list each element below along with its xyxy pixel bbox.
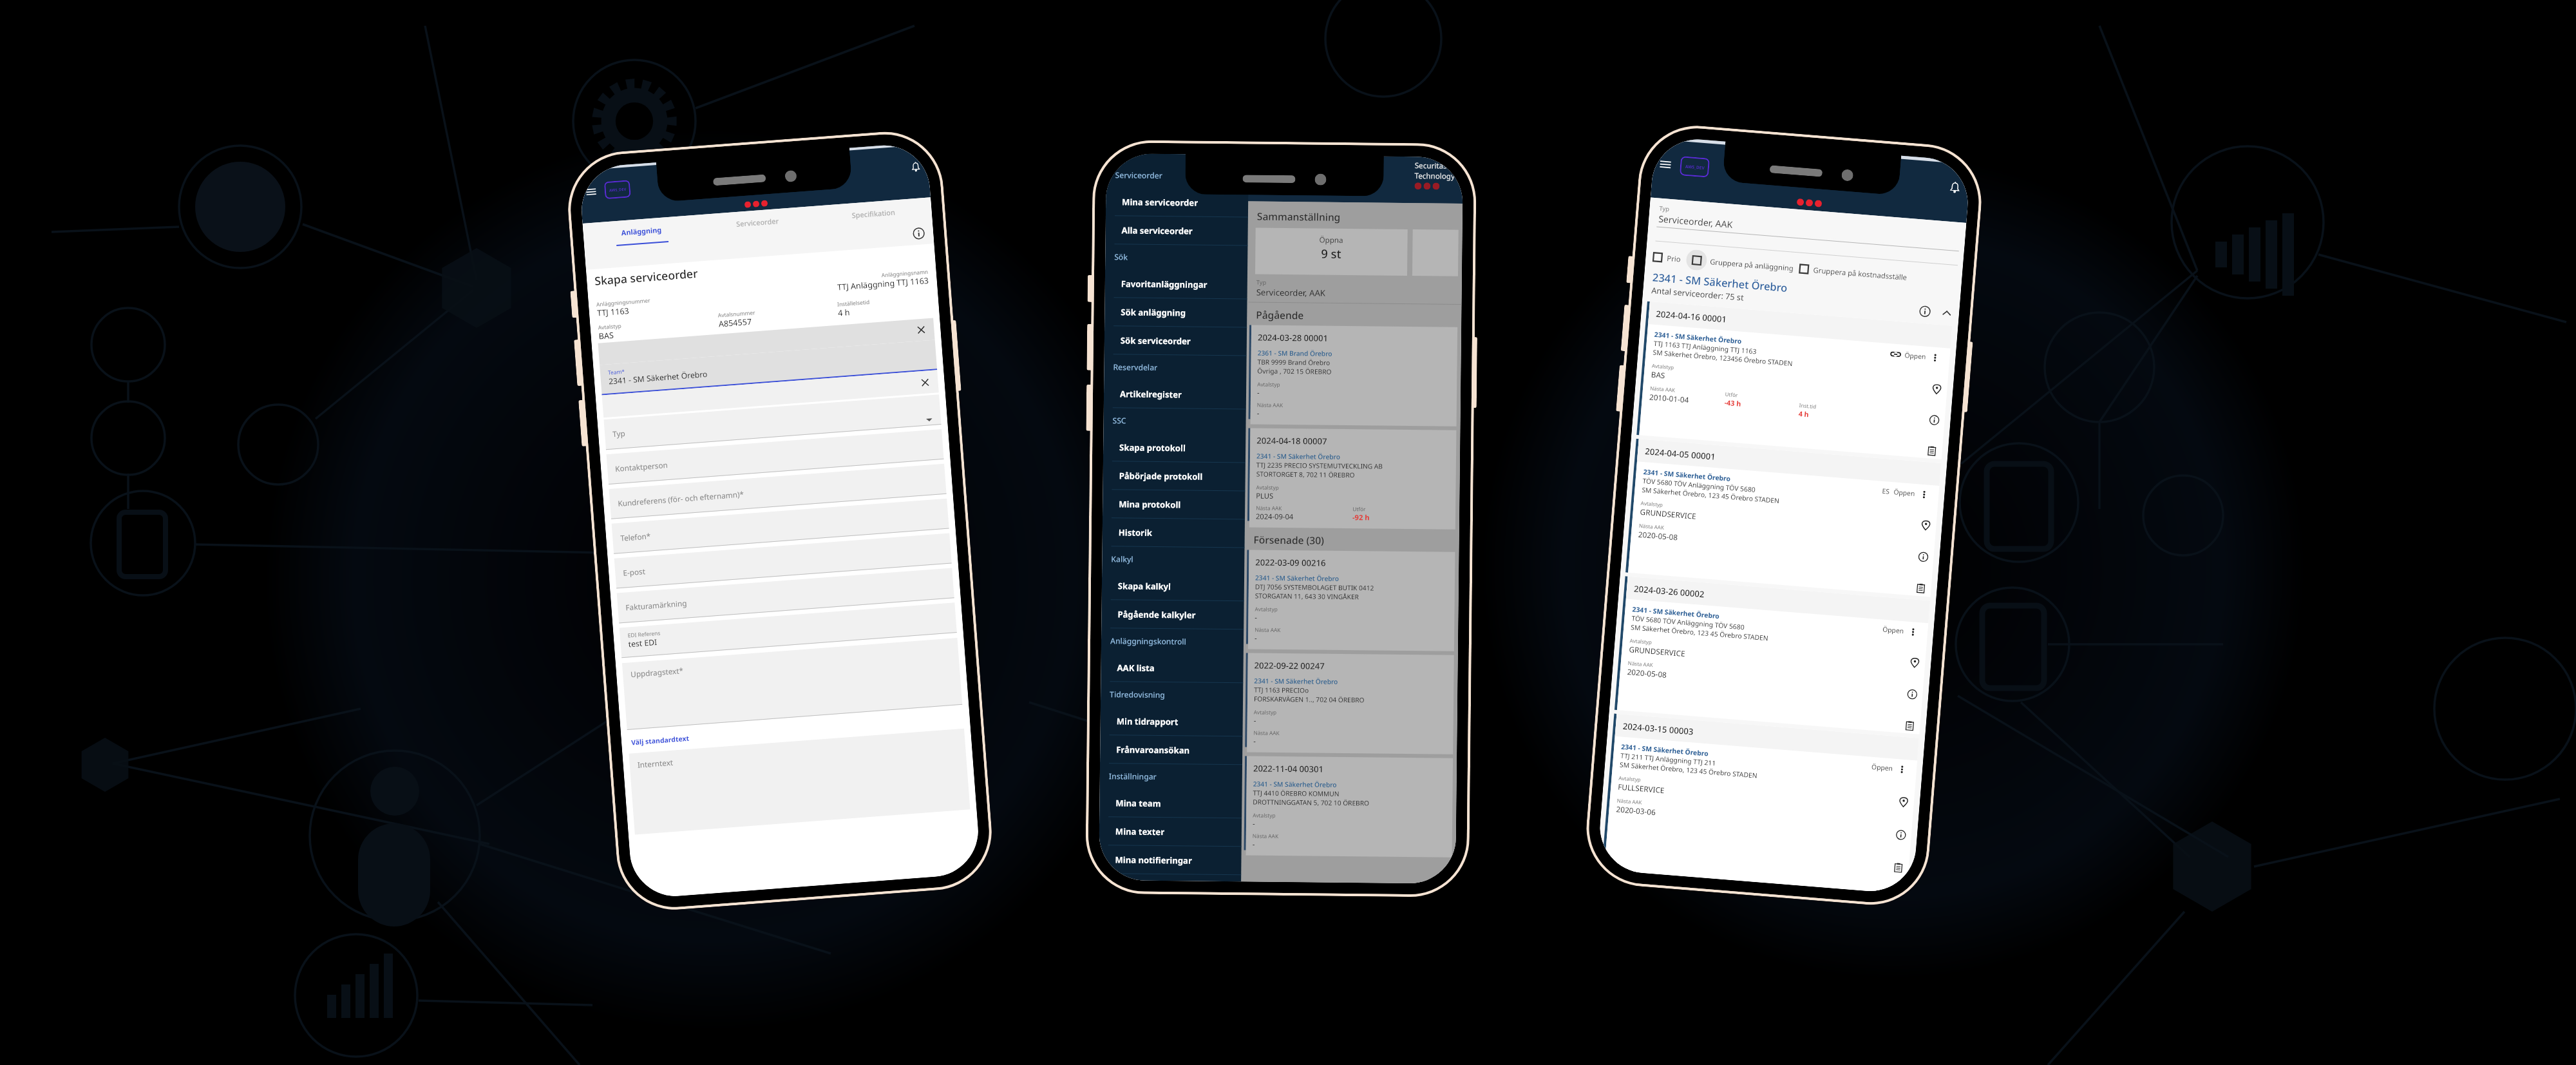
staticText: -	[1253, 819, 1255, 828]
button[interactable]: AWS_DEV	[604, 180, 631, 199]
button[interactable]: Anläggning	[583, 217, 700, 249]
button[interactable]: Artikelregister	[1104, 380, 1246, 409]
button[interactable]: Fakturamärkning	[617, 568, 954, 623]
button[interactable]: Skapa kalkyl	[1102, 572, 1244, 601]
button[interactable]: 2024-03-15 00003	[1602, 714, 1919, 894]
button[interactable]: Info	[1895, 829, 1906, 840]
staticText: 2024-04-16 00001	[1656, 308, 1727, 325]
button[interactable]: Plats	[1920, 520, 1931, 531]
button[interactable]: Info	[1919, 305, 1931, 318]
button[interactable]: Sök anläggning	[1105, 298, 1247, 327]
button[interactable]: Kundreferens (för- och efternamn)*	[609, 464, 946, 519]
button[interactable]: 2024-04-05 00001	[1626, 439, 1941, 597]
button[interactable]: Reservdelar	[1104, 354, 1247, 381]
button[interactable]: Mer	[1931, 353, 1940, 362]
button[interactable]: Anläggningskontroll	[1101, 628, 1244, 655]
button[interactable]: Protokoll	[1915, 583, 1926, 594]
button[interactable]: Pågående kalkyler	[1101, 600, 1244, 629]
button[interactable]: Serviceorder	[1106, 162, 1249, 189]
staticText: TBR 9999 Brand Örebro	[1257, 357, 1330, 367]
button[interactable]: Info	[1929, 415, 1940, 426]
button[interactable]: Serviceorder	[698, 208, 816, 240]
button[interactable]: Fäll ihop	[1941, 308, 1952, 319]
button[interactable]: Prio	[1652, 252, 1681, 264]
button[interactable]: Mina protokoll	[1103, 490, 1245, 519]
button[interactable]: Telefon*	[612, 498, 949, 554]
staticText: Inställelsetid	[837, 298, 870, 308]
button[interactable]: Protokoll	[1893, 862, 1904, 873]
button[interactable]: Sök	[1105, 244, 1248, 271]
staticText: Skapa protokoll	[1119, 442, 1186, 454]
button[interactable]: Frånvaroansökan	[1100, 735, 1243, 764]
button[interactable]: Gruppera på anläggning	[1685, 249, 1795, 278]
button[interactable]: Mina notifieringar	[1099, 845, 1241, 874]
button[interactable]: Skapa protokoll	[1103, 433, 1246, 462]
button[interactable]: Alla serviceorder	[1105, 216, 1248, 245]
staticText: Reservdelar	[1113, 362, 1158, 373]
button[interactable]: Mina texter	[1099, 817, 1242, 846]
button[interactable]: 2024-04-16 00001	[1637, 301, 1952, 459]
staticText: DTJ 7056 SYSTEMBOLAGET BUTIK 0412	[1255, 582, 1374, 592]
button[interactable]: Protokoll	[1904, 720, 1915, 731]
staticText: 2341 - SM Säkerhet Örebro	[1621, 742, 1709, 758]
button[interactable]: Gruppera på kostnadsställe	[1799, 264, 1907, 282]
button[interactable]: Team*	[600, 340, 937, 395]
button[interactable]: Notiser	[909, 161, 922, 174]
staticText: 4 h	[838, 307, 851, 319]
button[interactable]: Protokoll	[1926, 445, 1937, 456]
button[interactable]: SSC	[1103, 408, 1246, 435]
button[interactable]: Mer	[1898, 765, 1907, 774]
button[interactable]: AAK lista	[1101, 653, 1243, 683]
staticText: Frånvaroansökan	[1116, 744, 1190, 756]
staticText: -	[1253, 736, 1256, 746]
staticText: Mina notifieringar	[1115, 854, 1192, 866]
staticText: Serviceorder, AAK	[1658, 212, 1734, 231]
button[interactable]: Favoritanläggningar	[1105, 269, 1247, 299]
staticText: Uppdragstext*	[630, 665, 684, 679]
button[interactable]: AWS_DEV	[1679, 156, 1710, 178]
staticText: 2341 - SM Säkerhet Örebro	[1632, 605, 1720, 621]
button[interactable]: Meny	[585, 186, 597, 198]
staticText: SM Säkerhet Örebro, 123 45 Örebro STADEN	[1619, 760, 1758, 780]
button[interactable]: Notiser	[1947, 180, 1963, 195]
button[interactable]: Plats	[1909, 657, 1920, 668]
button[interactable]: Specifikation	[815, 199, 933, 231]
button[interactable]: Mina team	[1099, 789, 1242, 818]
button[interactable]: Typ	[604, 394, 941, 450]
staticText: AAK lista	[1117, 662, 1155, 674]
button[interactable]: Kalkyl	[1102, 546, 1245, 573]
button[interactable]: Historik	[1102, 518, 1245, 547]
staticText: TÖV 5680 TÖV Anläggning TÖV 5680	[1642, 476, 1756, 494]
button[interactable]: Plats	[1898, 797, 1909, 808]
staticText: TTJ 4410 ÖREBRO KOMMUN	[1253, 788, 1339, 798]
staticText: Avtalstyp	[1641, 499, 1664, 508]
button[interactable]: Uppdragstext*	[622, 638, 962, 730]
button[interactable]: Info	[1918, 551, 1929, 562]
button[interactable]: Plats	[1931, 384, 1942, 395]
button[interactable]: Rensa	[602, 370, 939, 418]
button[interactable]: Påbörjade protokoll	[1103, 461, 1245, 491]
button[interactable]: Kontaktperson	[606, 429, 944, 485]
button[interactable]: EDI Referens	[619, 603, 957, 658]
staticText: -	[1252, 839, 1255, 849]
other: Rensa	[920, 377, 931, 388]
staticText: Pågående	[1256, 308, 1304, 322]
button[interactable]: Min tidrapport	[1100, 707, 1243, 736]
button[interactable]: 2024-03-26 00002	[1615, 576, 1930, 734]
button[interactable]: Tidredovisning	[1101, 682, 1243, 708]
staticText: Serviceorder	[736, 216, 779, 229]
button[interactable]: Välj standardtext	[631, 734, 690, 747]
button[interactable]: E-post	[614, 533, 952, 589]
button[interactable]: Rensa	[598, 318, 935, 365]
button[interactable]: Inställningar	[1100, 763, 1242, 790]
button[interactable]: Sök serviceorder	[1104, 326, 1247, 355]
button[interactable]: Mer	[1920, 490, 1929, 499]
button[interactable]: Mina serviceorder	[1106, 188, 1248, 217]
button[interactable]: Info	[1907, 689, 1918, 700]
staticText: Öppen	[1882, 625, 1904, 635]
button[interactable]: Meny	[1658, 158, 1672, 171]
staticText: Historik	[1118, 527, 1153, 539]
button[interactable]: Information	[912, 227, 925, 240]
button[interactable]: Interntext	[629, 728, 970, 835]
button[interactable]: Mer	[1909, 627, 1918, 636]
